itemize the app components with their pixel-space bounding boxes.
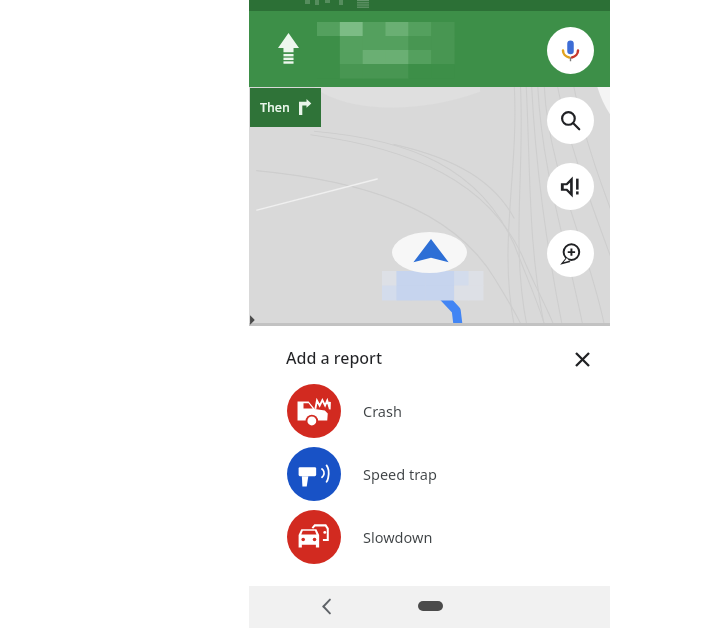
button[interactable]: Speed trap (249, 442, 610, 505)
staticText: Add a report (286, 347, 383, 369)
staticText: Then (260, 99, 290, 116)
button[interactable]: Search (547, 97, 594, 144)
staticText: Crash (363, 401, 402, 421)
button[interactable]: Slowdown (249, 505, 610, 568)
button[interactable]: Add a report (547, 230, 594, 277)
button[interactable]: Google Assistant (547, 27, 594, 74)
button[interactable]: Crash (249, 379, 610, 442)
staticText: Slowdown (363, 527, 433, 547)
staticText: Speed trap (363, 464, 437, 484)
button[interactable]: Back (313, 593, 339, 619)
button[interactable]: Sound alerts (547, 163, 594, 210)
button[interactable]: Close (564, 341, 600, 377)
button[interactable]: Home (418, 601, 443, 611)
